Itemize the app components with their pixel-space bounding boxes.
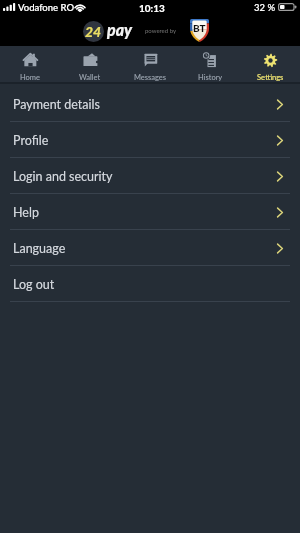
button[interactable]: Language — [0, 230, 300, 266]
staticText: Log out — [13, 277, 55, 292]
staticText: pay — [107, 20, 133, 39]
button[interactable]: Home — [0, 46, 60, 82]
staticText: 10:13 — [139, 2, 165, 14]
button[interactable]: Profile — [0, 122, 300, 158]
staticText: Help — [13, 205, 39, 220]
staticText: Settings — [257, 73, 284, 82]
staticText: Login and security — [13, 169, 113, 184]
staticText: Messages — [134, 73, 167, 82]
staticText: Vodafone RO — [18, 2, 75, 13]
button[interactable]: Help — [0, 194, 300, 230]
staticText: 24 — [85, 23, 102, 40]
staticText: Profile — [13, 133, 49, 148]
button[interactable]: Settings — [240, 46, 300, 82]
button[interactable]: Payment details — [0, 86, 300, 122]
button[interactable]: Wallet — [60, 46, 120, 82]
staticText: BT — [193, 22, 206, 34]
staticText: powered by — [145, 27, 177, 34]
staticText: Home — [20, 73, 40, 82]
staticText: History — [198, 73, 223, 82]
staticText: 32 % — [254, 2, 276, 13]
button[interactable]: Log out — [0, 266, 300, 302]
button[interactable]: Messages — [120, 46, 180, 82]
staticText: Language — [13, 241, 66, 256]
button[interactable]: History — [180, 46, 240, 82]
staticText: Wallet — [79, 73, 101, 82]
button[interactable]: Login and security — [0, 158, 300, 194]
staticText: Payment details — [13, 97, 100, 112]
